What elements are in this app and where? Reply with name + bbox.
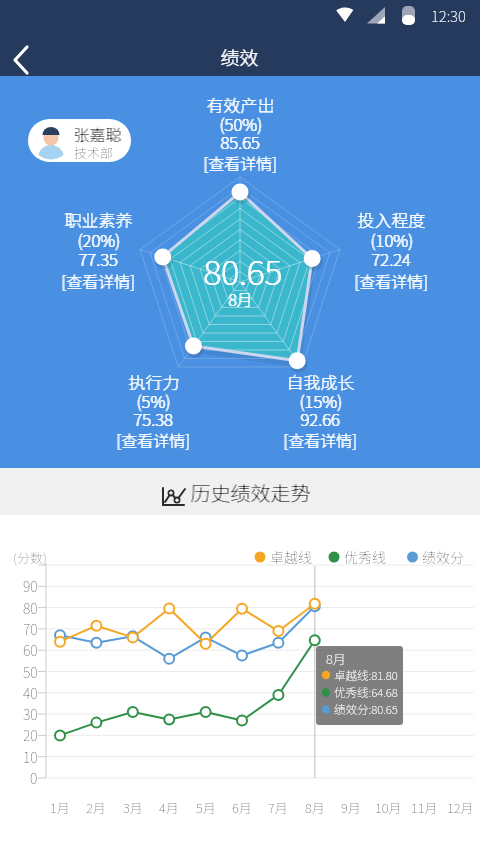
staticText: 有效产出 [207, 92, 275, 117]
staticText: [查看详情] [283, 428, 357, 451]
staticText: 卓越线 [270, 547, 312, 567]
staticText: 张嘉聪 [74, 122, 123, 145]
staticText: [查看详情] [116, 428, 190, 451]
button[interactable] [4, 42, 40, 78]
staticText: 80 [23, 598, 38, 618]
staticText: [查看详情] [117, 428, 191, 451]
staticText: 7月 [268, 798, 288, 817]
staticText: 50 [23, 662, 38, 682]
staticText: 77.35 [78, 246, 118, 271]
staticText: 优秀线:64.68 [334, 684, 398, 701]
staticText: 70 [23, 619, 38, 639]
staticText: 职业素养 [64, 207, 132, 232]
staticText: 92.66 [301, 406, 341, 431]
staticText: 30 [23, 704, 38, 724]
staticText: [查看详情] [62, 269, 136, 292]
staticText: 75.38 [134, 406, 174, 431]
staticText: 有效产出 [206, 92, 274, 117]
staticText: 绩效分:80.65 [334, 701, 398, 718]
staticText: 72.24 [371, 246, 411, 271]
staticText: (15%) [300, 388, 343, 413]
staticText: 5月 [196, 798, 216, 817]
staticText: 执行力 [129, 369, 180, 394]
staticText: 3月 [123, 798, 143, 817]
staticText: (20%) [77, 227, 120, 252]
staticText: 自我成长 [286, 369, 354, 394]
staticText: [查看详情] [354, 269, 428, 292]
staticText: 历史绩效走势 [190, 478, 310, 507]
staticText: 80.65 [204, 246, 283, 295]
staticText: 10月 [375, 798, 402, 817]
button[interactable]: [查看详情] [271, 264, 480, 296]
staticText: [查看详情] [61, 269, 135, 292]
staticText: (10%) [371, 227, 414, 252]
staticText: 历史绩效走势 [191, 478, 311, 507]
staticText: 60 [23, 640, 38, 660]
staticText: 8月 [326, 649, 346, 668]
staticText: 10 [23, 747, 38, 767]
staticText: 90 [23, 576, 38, 596]
staticText: [查看详情] [204, 151, 278, 174]
staticText: [查看详情] [284, 428, 358, 451]
staticText: 9月 [341, 798, 361, 817]
staticText: 40 [23, 683, 38, 703]
staticText: 4月 [159, 798, 179, 817]
staticText: (50%) [219, 111, 262, 136]
staticText: 优秀线 [344, 547, 386, 567]
staticText: 72.24 [372, 246, 412, 271]
button[interactable]: [查看详情] [120, 146, 360, 178]
staticText: 执行力 [128, 369, 179, 394]
staticText: 投入程度 [358, 207, 426, 232]
staticText: (分数) [13, 548, 47, 567]
staticText: 绩效 [220, 43, 259, 71]
staticText: (5%) [137, 388, 171, 413]
button[interactable]: [查看详情] [33, 423, 273, 455]
staticText: 1月 [50, 798, 70, 817]
staticText: 卓越线:81.80 [334, 667, 398, 684]
staticText: 绩效分 [422, 547, 464, 567]
staticText: (50%) [220, 111, 263, 136]
staticText: 20 [23, 725, 38, 745]
button[interactable]: [查看详情] [200, 423, 440, 455]
staticText: 11月 [411, 798, 438, 817]
staticText: 8月 [229, 287, 254, 310]
staticText: (20%) [78, 227, 121, 252]
button[interactable]: [查看详情] [0, 264, 218, 296]
button[interactable] [28, 119, 131, 162]
staticText: 投入程度 [357, 207, 425, 232]
staticText: 80.65 [203, 246, 282, 295]
staticText: [查看详情] [203, 151, 277, 174]
staticText: 自我成长 [287, 369, 355, 394]
staticText: 75.38 [133, 406, 173, 431]
staticText: (15%) [299, 388, 342, 413]
staticText: 85.65 [221, 129, 261, 154]
staticText: 技术部 [74, 143, 114, 162]
staticText: 0 [30, 768, 38, 788]
staticText: 绩效 [221, 43, 260, 71]
staticText: 8月 [305, 798, 325, 817]
staticText: 张嘉聪 [73, 122, 122, 145]
staticText: 85.65 [220, 129, 260, 154]
staticText: 12:30 [431, 5, 466, 27]
staticText: [查看详情] [355, 269, 429, 292]
staticText: (5%) [136, 388, 170, 413]
staticText: 92.66 [300, 406, 340, 431]
staticText: 6月 [232, 798, 252, 817]
staticText: 8月 [228, 287, 253, 310]
staticText: 职业素养 [65, 207, 133, 232]
staticText: (10%) [370, 227, 413, 252]
staticText: 12月 [447, 798, 474, 817]
staticText: 77.35 [79, 246, 119, 271]
staticText: 2月 [86, 798, 106, 817]
